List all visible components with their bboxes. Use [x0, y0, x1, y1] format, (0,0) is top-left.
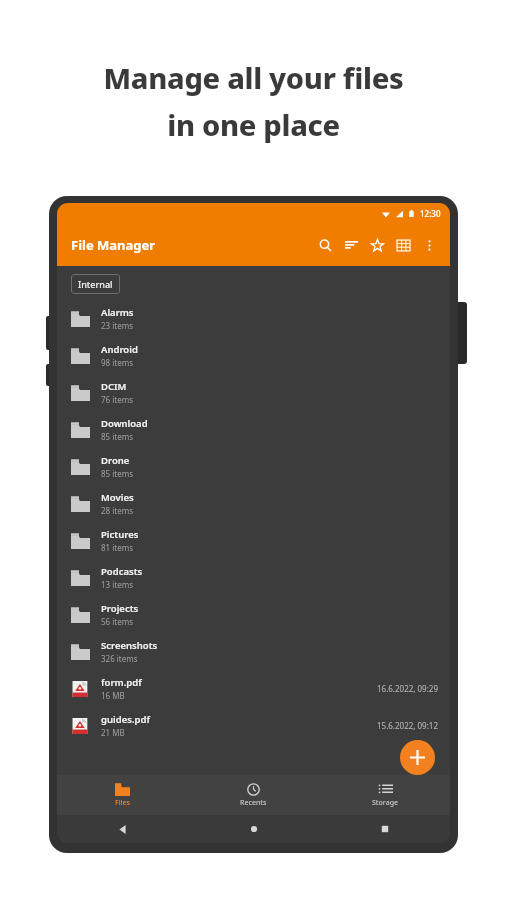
staticText: Files: [115, 798, 130, 808]
staticText: Manage all your files: [103, 58, 404, 97]
button[interactable]: form.pdf: [57, 670, 450, 707]
staticText: Internal: [78, 278, 113, 290]
button[interactable]: Drone: [57, 448, 450, 485]
button[interactable]: Search: [312, 228, 338, 262]
button[interactable]: Recent apps: [319, 815, 450, 843]
staticText: 56 items: [101, 616, 134, 627]
button[interactable]: Grid view: [390, 228, 416, 262]
staticText: guides.pdf: [101, 713, 150, 726]
staticText: Drone: [101, 454, 130, 467]
staticText: 98 items: [101, 357, 134, 368]
staticText: 15.6.2022, 09:12: [377, 720, 438, 731]
staticText: Android: [101, 343, 138, 356]
staticText: File Manager: [71, 236, 156, 254]
button[interactable]: Podcasts: [57, 559, 450, 596]
staticText: 85 items: [101, 431, 134, 442]
staticText: Projects: [101, 602, 139, 615]
button[interactable]: Pictures: [57, 522, 450, 559]
staticText: 76 items: [101, 394, 134, 405]
staticText: 12:30: [420, 208, 441, 219]
button[interactable]: More options: [416, 228, 442, 262]
button[interactable]: Files: [57, 775, 188, 815]
button[interactable]: Internal: [71, 274, 120, 294]
staticText: 16 MB: [101, 690, 125, 701]
staticText: 13 items: [101, 579, 134, 590]
button[interactable]: Screenshots: [57, 633, 450, 670]
button[interactable]: Create new: [400, 740, 435, 775]
button[interactable]: Android: [57, 337, 450, 374]
staticText: Pictures: [101, 528, 139, 541]
staticText: DCIM: [101, 380, 127, 393]
button[interactable]: Projects: [57, 596, 450, 633]
button[interactable]: Alarms: [57, 300, 450, 337]
button[interactable]: Favorites: [364, 228, 390, 262]
staticText: 23 items: [101, 320, 134, 331]
staticText: Recents: [240, 798, 267, 808]
staticText: Alarms: [101, 306, 134, 319]
staticText: 28 items: [101, 505, 134, 516]
staticText: 85 items: [101, 468, 134, 479]
staticText: Movies: [101, 491, 134, 504]
button[interactable]: guides.pdf: [57, 707, 450, 744]
staticText: 81 items: [101, 542, 134, 553]
button[interactable]: Download: [57, 411, 450, 448]
button[interactable]: DCIM: [57, 374, 450, 411]
staticText: form.pdf: [101, 676, 142, 689]
staticText: Podcasts: [101, 565, 143, 578]
staticText: Storage: [372, 798, 398, 808]
button[interactable]: Storage: [319, 775, 450, 815]
button[interactable]: Movies: [57, 485, 450, 522]
button[interactable]: Recents: [188, 775, 319, 815]
staticText: 326 items: [101, 653, 138, 664]
staticText: Screenshots: [101, 639, 158, 652]
staticText: Download: [101, 417, 148, 430]
button[interactable]: Back: [57, 815, 188, 843]
staticText: in one place: [167, 105, 340, 144]
staticText: 21 MB: [101, 727, 125, 738]
button[interactable]: Sort: [338, 228, 364, 262]
button[interactable]: Home: [188, 815, 319, 843]
staticText: 16.6.2022, 09:29: [377, 683, 438, 694]
